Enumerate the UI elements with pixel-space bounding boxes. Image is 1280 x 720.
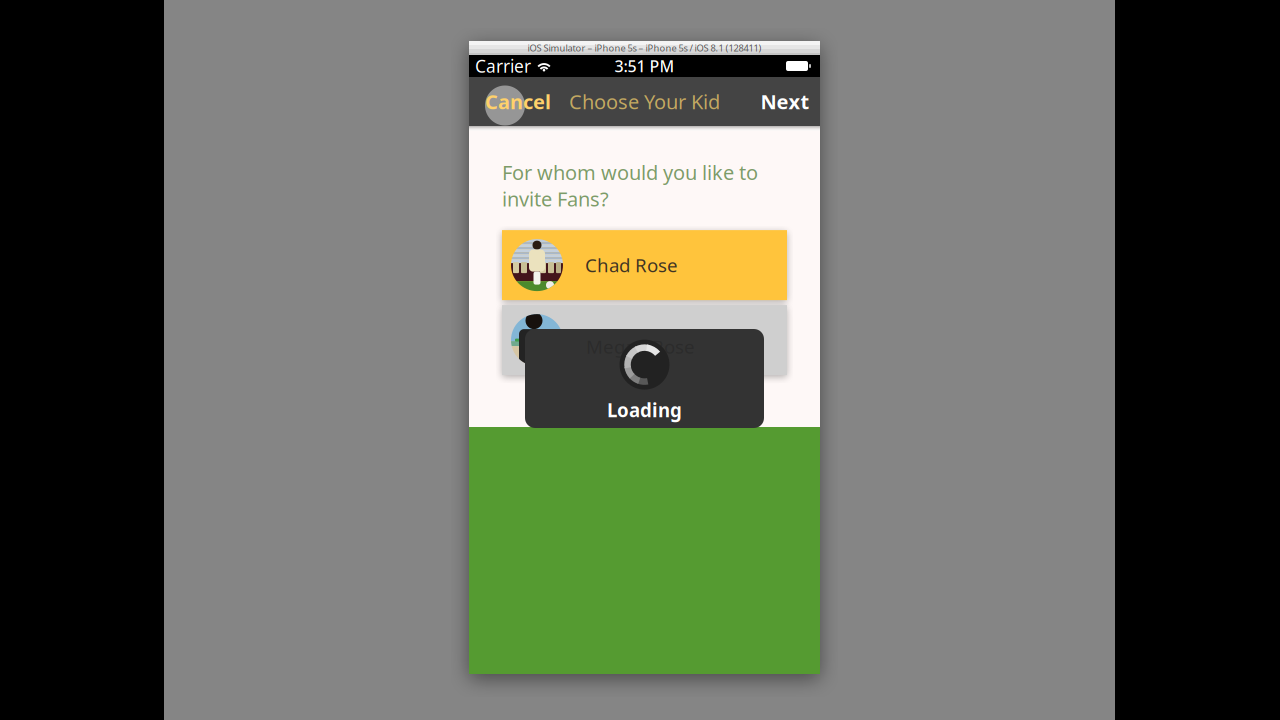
- button[interactable]: Next: [750, 77, 820, 126]
- staticText: For whom would you like to invite Fans?: [502, 159, 758, 212]
- button[interactable]: Chad Rose: [502, 230, 787, 300]
- button[interactable]: Cancel: [469, 77, 557, 126]
- staticText: Cancel: [485, 88, 551, 115]
- staticText: Megan Rose: [585, 328, 694, 352]
- staticText: Loading: [607, 398, 682, 422]
- button[interactable]: Megan Rose: [502, 305, 787, 375]
- staticText: Chad Rose: [585, 253, 678, 277]
- staticText: Carrier: [475, 54, 531, 77]
- staticText: Choose Your Kid: [569, 88, 720, 115]
- staticText: 3:51 PM: [614, 55, 674, 77]
- staticText: Megan Rose: [586, 334, 695, 359]
- staticText: Next: [760, 88, 809, 115]
- staticText: iOS Simulator – iPhone 5s – iPhone 5s / …: [527, 42, 761, 54]
